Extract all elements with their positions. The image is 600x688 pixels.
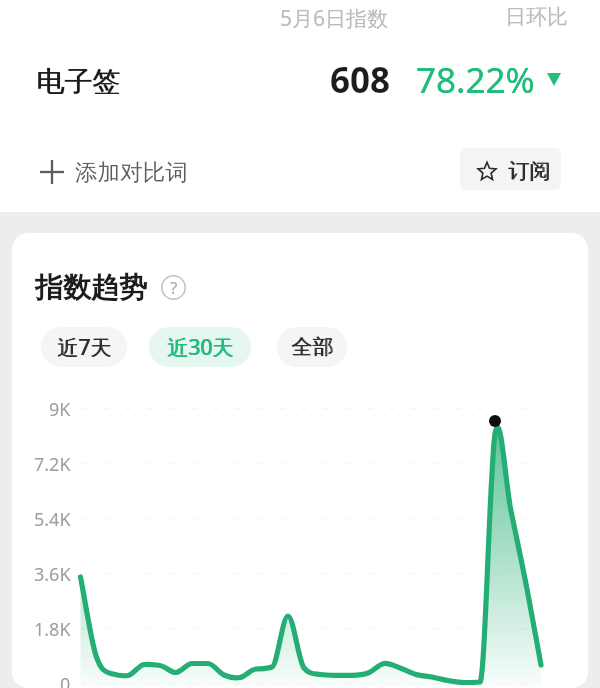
staticText: 608 <box>330 56 391 104</box>
staticText: 近7天 <box>57 333 112 362</box>
staticText: 全部 <box>291 334 333 360</box>
staticText: 5.4K <box>34 507 71 531</box>
staticText: 订阅 <box>508 158 550 184</box>
button[interactable]: 订阅 <box>460 148 561 190</box>
staticText: 全部 <box>292 334 334 360</box>
staticText: 电子签 <box>37 64 121 99</box>
staticText: 9K <box>49 397 71 421</box>
staticText: 7.2K <box>34 452 71 476</box>
staticText: 3.6K <box>34 562 71 586</box>
staticText: 订阅 <box>509 158 551 184</box>
staticText: 78.22% <box>416 56 535 104</box>
staticText: 近30天 <box>168 333 235 362</box>
staticText: 近30天 <box>167 333 234 362</box>
staticText: 近7天 <box>58 333 113 362</box>
staticText: 添加对比词 <box>75 158 188 186</box>
button[interactable]: 添加对比词 <box>28 148 200 196</box>
staticText: 日环比 <box>505 4 568 30</box>
other: Decreasing <box>547 73 561 86</box>
button[interactable]: 近30天 <box>149 327 251 367</box>
staticText: 1.8K <box>34 617 71 641</box>
staticText: 指数趋势 <box>35 270 147 305</box>
staticText: 78.22% <box>416 56 535 104</box>
staticText: 0 <box>60 672 71 688</box>
button[interactable]: 近7天 <box>41 327 127 367</box>
button[interactable]: Help <box>161 275 186 300</box>
staticText: 5月6日指数 <box>280 4 389 33</box>
button[interactable]: 全部 <box>277 327 347 367</box>
staticText: ? <box>170 276 178 299</box>
staticText: 电子签 <box>36 64 120 99</box>
